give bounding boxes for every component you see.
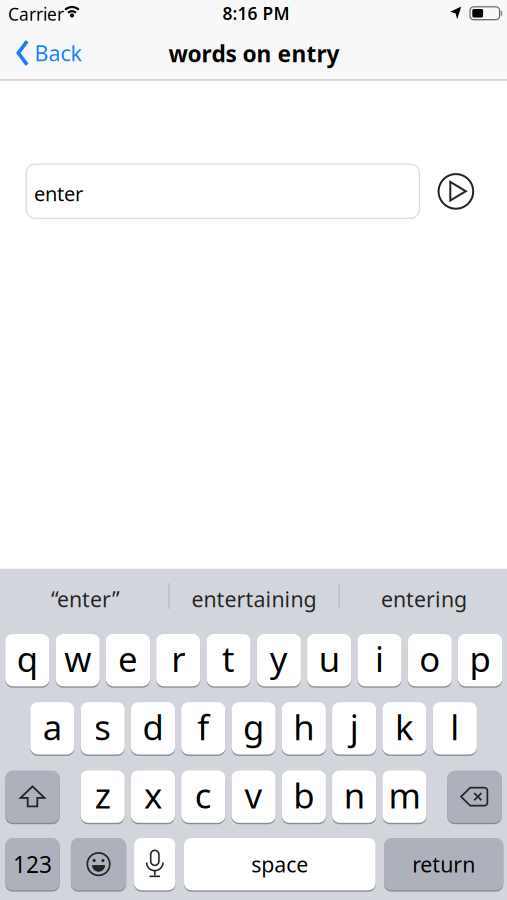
button[interactable]: t: [206, 633, 251, 687]
button[interactable]: Emoji: [71, 837, 126, 891]
staticText: a: [43, 704, 62, 750]
button[interactable]: s: [81, 701, 125, 755]
staticText: r: [171, 636, 185, 682]
staticText: Carrier: [8, 3, 64, 26]
button[interactable]: u: [307, 633, 351, 687]
staticText: z: [95, 772, 111, 818]
staticText: x: [144, 772, 162, 818]
button[interactable]: j: [332, 701, 376, 755]
staticText: j: [350, 704, 359, 750]
staticText: enter: [34, 180, 83, 207]
staticText: return: [412, 850, 475, 878]
staticText: “enter”: [51, 585, 120, 613]
button[interactable]: q: [5, 633, 49, 687]
button[interactable]: n: [332, 769, 376, 824]
button[interactable]: l: [433, 701, 477, 755]
button[interactable]: Delete: [447, 769, 502, 824]
button[interactable]: o: [408, 633, 452, 687]
staticText: entertaining: [191, 585, 316, 613]
staticText: t: [222, 636, 235, 682]
staticText: 123: [13, 849, 52, 879]
staticText: o: [419, 636, 440, 682]
staticText: d: [142, 704, 163, 750]
button[interactable]: r: [156, 633, 200, 687]
button[interactable]: h: [282, 701, 326, 755]
staticText: u: [319, 636, 340, 682]
button[interactable]: return: [384, 837, 503, 891]
button[interactable]: e: [106, 633, 150, 687]
staticText: k: [395, 704, 414, 750]
button[interactable]: entering: [344, 581, 504, 617]
staticText: h: [293, 704, 314, 750]
button[interactable]: g: [231, 701, 276, 755]
button[interactable]: entertaining: [174, 581, 334, 617]
button[interactable]: i: [357, 633, 401, 687]
staticText: q: [17, 636, 38, 682]
staticText: entering: [381, 585, 467, 613]
button[interactable]: Play: [438, 173, 474, 210]
button[interactable]: w: [56, 633, 100, 687]
staticText: e: [118, 636, 138, 682]
button[interactable]: d: [131, 701, 175, 755]
button[interactable]: f: [181, 701, 225, 755]
staticText: n: [344, 772, 365, 818]
staticText: y: [270, 636, 288, 682]
staticText: l: [450, 704, 459, 750]
staticText: words on entry: [168, 38, 339, 68]
button[interactable]: Dictate: [134, 837, 175, 891]
button[interactable]: p: [458, 633, 502, 687]
staticText: space: [251, 850, 308, 878]
staticText: p: [470, 636, 491, 682]
button[interactable]: b: [282, 769, 326, 824]
button[interactable]: y: [257, 633, 301, 687]
button[interactable]: v: [231, 769, 276, 824]
button[interactable]: “enter”: [5, 581, 165, 617]
button[interactable]: c: [181, 769, 225, 824]
button[interactable]: z: [81, 769, 125, 824]
button[interactable]: k: [382, 701, 426, 755]
staticText: i: [375, 636, 384, 682]
staticText: s: [94, 704, 111, 750]
staticText: b: [293, 772, 314, 818]
staticText: v: [245, 772, 263, 818]
staticText: Back: [34, 39, 81, 67]
staticText: 8:16 PM: [222, 2, 289, 25]
staticText: g: [243, 704, 264, 750]
button[interactable]: space: [184, 837, 376, 891]
staticText: c: [195, 772, 212, 818]
button[interactable]: a: [30, 701, 74, 755]
button[interactable]: m: [382, 769, 426, 824]
staticText: m: [388, 772, 420, 818]
button[interactable]: Shift: [5, 769, 60, 824]
staticText: f: [197, 704, 209, 750]
button[interactable]: x: [131, 769, 175, 824]
button[interactable]: Back: [16, 39, 81, 67]
button[interactable]: Numbers: [5, 837, 60, 891]
staticText: w: [64, 636, 91, 682]
